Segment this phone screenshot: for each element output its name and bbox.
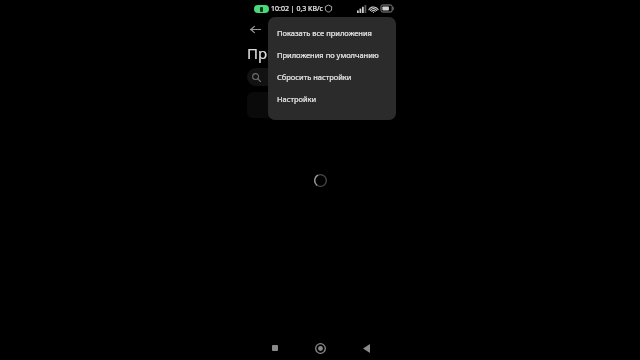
button[interactable]: Назад (355, 337, 377, 359)
button[interactable]: Назад (245, 19, 265, 39)
button[interactable]: Сбросить настройки приложений (268, 66, 396, 88)
staticText: 10:02 | 0,3 KB/c (271, 4, 323, 14)
staticText: Приложения по умолчанию (277, 50, 379, 60)
staticText: Сбросить настройки приложений (277, 72, 387, 82)
staticText: Приложения (247, 43, 341, 63)
button[interactable]: Недавние приложения (264, 337, 286, 359)
button[interactable]: Приложения по умолчанию (268, 44, 396, 66)
button[interactable] (247, 68, 393, 86)
staticText: Показать все приложения (277, 28, 372, 38)
button[interactable]: Главный экран (309, 337, 331, 359)
staticText: Настройки (277, 94, 317, 104)
button[interactable]: Показать все приложения (268, 22, 396, 44)
button[interactable]: Настройки (268, 88, 396, 110)
